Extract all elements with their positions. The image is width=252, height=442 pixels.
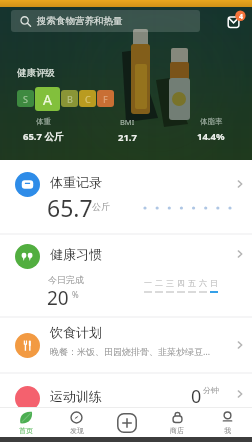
staticText: %: [72, 289, 79, 300]
staticText: 公斤: [92, 201, 110, 212]
staticText: 65.7 公斤: [23, 130, 64, 143]
staticText: 20: [47, 285, 69, 311]
button[interactable]: 体重记录: [0, 160, 252, 233]
button[interactable]: 我: [202, 408, 252, 437]
staticText: 分钟: [203, 385, 219, 395]
button[interactable]: F: [97, 90, 114, 107]
button[interactable]: C: [79, 90, 96, 107]
staticText: 商店: [170, 426, 184, 435]
staticText: 三: [166, 278, 174, 288]
staticText: B: [67, 93, 73, 105]
staticText: 体重记录: [50, 174, 102, 190]
staticText: 65.7: [47, 192, 93, 223]
staticText: 健康习惯: [50, 246, 102, 262]
button[interactable]: S: [17, 90, 34, 107]
button[interactable]: 运动训练: [0, 374, 252, 414]
button[interactable]: B: [61, 90, 78, 107]
button[interactable]: 搜索食物营养和热量: [11, 10, 200, 32]
staticText: 我: [224, 426, 231, 435]
staticText: 搜索食物营养和热量: [37, 15, 123, 27]
button[interactable]: 健康习惯: [0, 235, 252, 316]
staticText: 体重: [36, 117, 51, 126]
staticText: 发现: [70, 426, 84, 435]
button[interactable]: 首页: [0, 408, 51, 437]
staticText: 五: [188, 278, 196, 288]
staticText: 首页: [19, 426, 33, 435]
staticText: A: [43, 90, 52, 109]
staticText: F: [103, 93, 108, 105]
staticText: 晚餐：米饭、田园烧排骨、韭菜炒绿豆…: [50, 345, 211, 357]
staticText: 体脂率: [200, 117, 223, 126]
staticText: 饮食计划: [50, 324, 102, 340]
staticText: 4: [239, 12, 244, 22]
staticText: 运动训练: [50, 388, 102, 404]
button[interactable]: 商店: [152, 408, 202, 437]
staticText: 六: [199, 278, 207, 288]
staticText: 健康评级: [17, 67, 55, 79]
staticText: 日: [210, 278, 218, 288]
staticText: 二: [155, 278, 163, 288]
staticText: BMI: [120, 117, 135, 127]
staticText: 今日完成: [48, 274, 84, 285]
staticText: 21.7: [118, 131, 137, 144]
button[interactable]: Add: [117, 413, 137, 433]
staticText: C: [85, 93, 91, 105]
button[interactable]: A: [35, 87, 60, 111]
staticText: 14.4%: [197, 130, 225, 143]
staticText: S: [23, 93, 28, 105]
button[interactable]: 发现: [51, 408, 102, 437]
button[interactable]: Messages: [224, 8, 248, 32]
staticText: 一: [144, 278, 152, 288]
staticText: 0: [191, 384, 202, 409]
button[interactable]: 饮食计划: [0, 318, 252, 372]
staticText: 四: [177, 278, 185, 288]
